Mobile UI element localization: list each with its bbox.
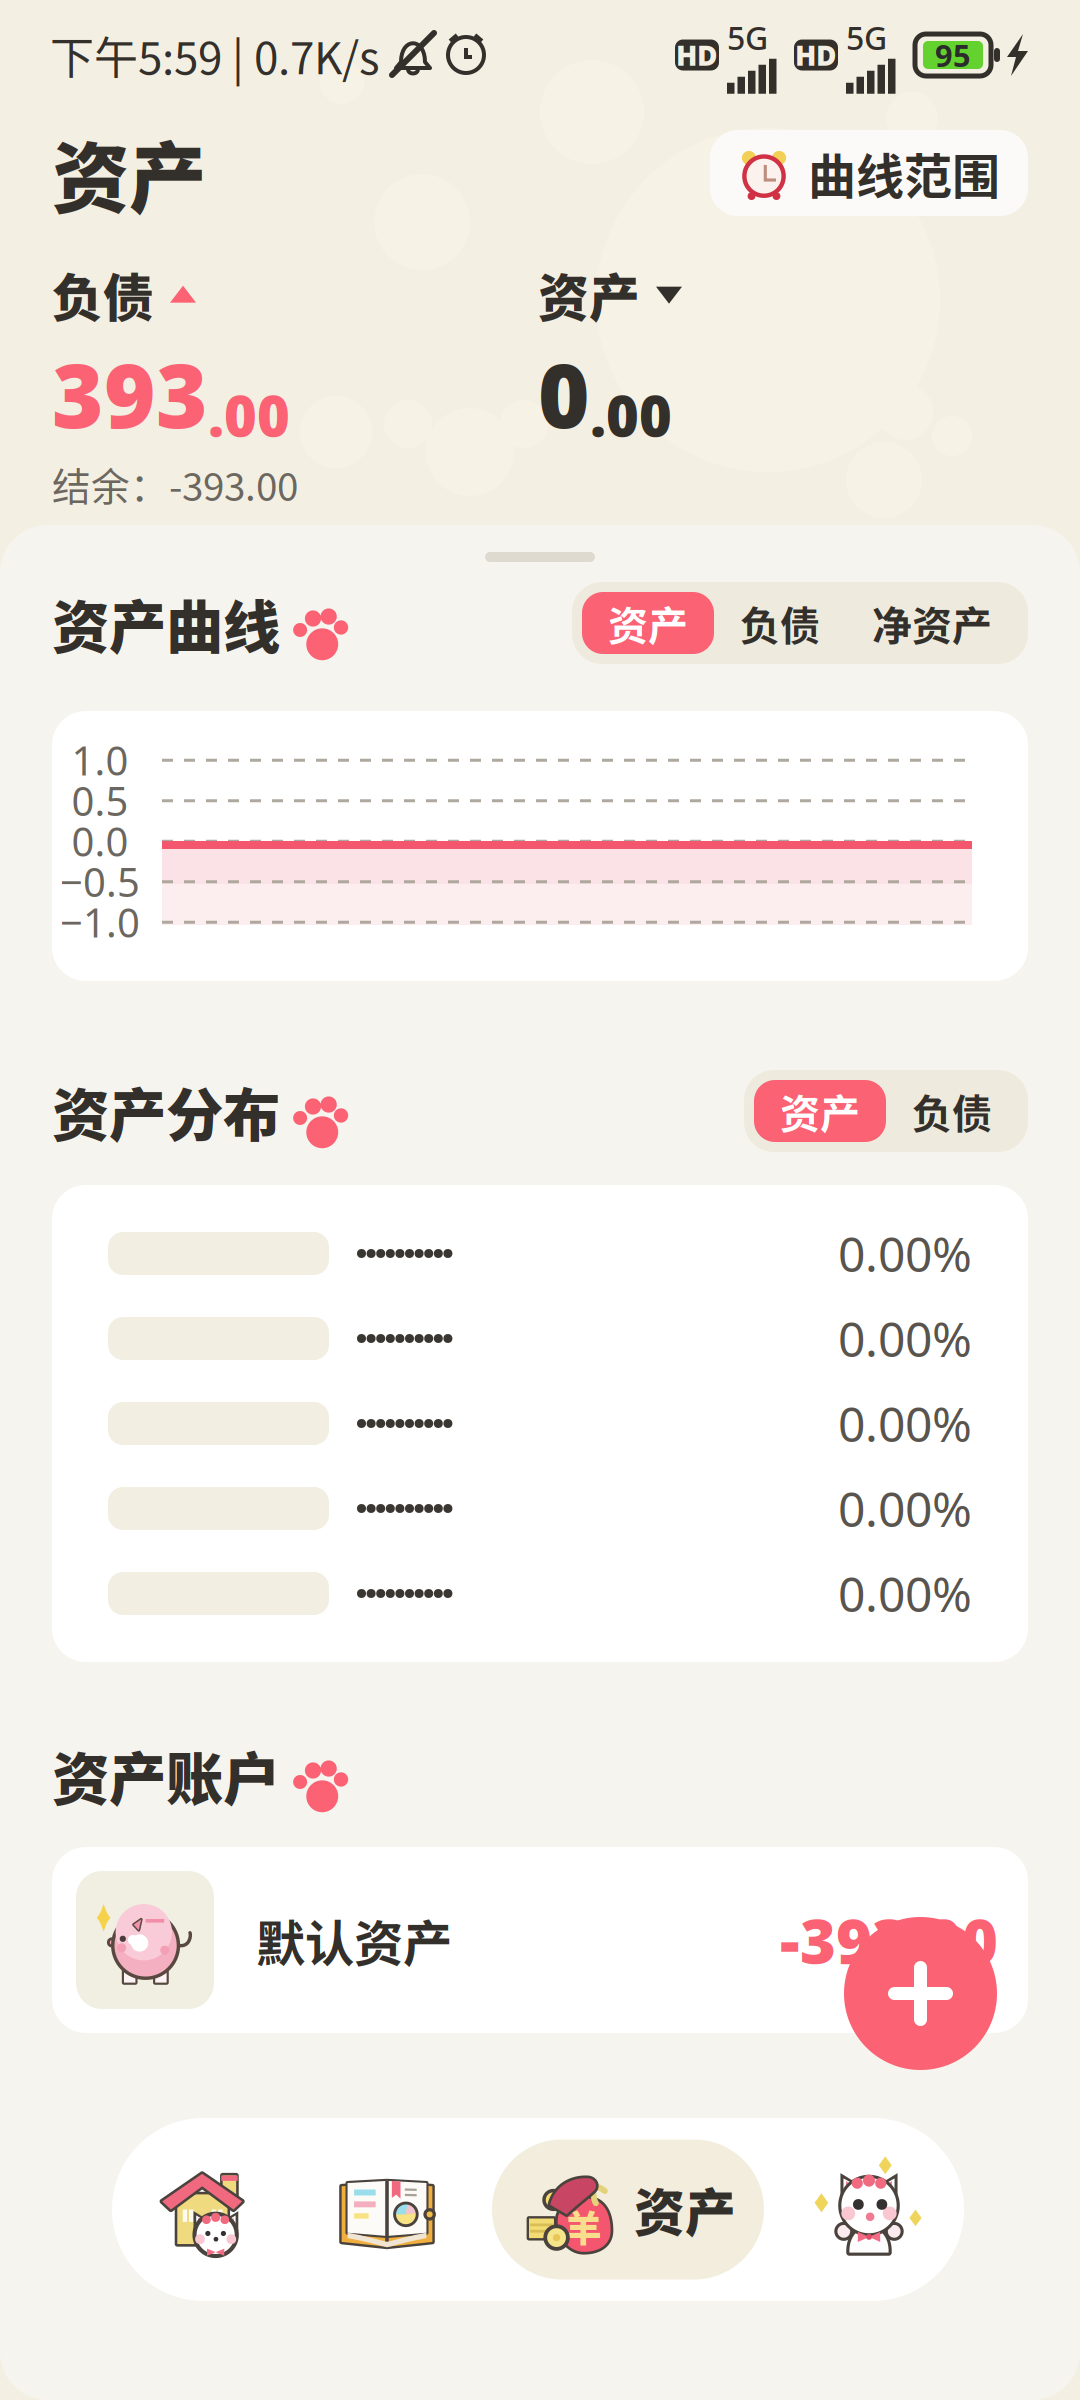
- button[interactable]: 资产: [754, 1080, 886, 1142]
- staticText: −0.5: [60, 855, 140, 908]
- button[interactable]: 首页: [132, 2134, 282, 2284]
- staticText: 资产: [608, 594, 688, 652]
- staticText: 资产: [634, 2173, 736, 2246]
- staticText: 0: [538, 335, 590, 452]
- staticText: 1.0: [71, 733, 128, 786]
- staticText: 默认资产: [256, 1904, 452, 1976]
- staticText: 0.00%: [838, 1562, 972, 1625]
- staticText: 0.0: [71, 814, 128, 867]
- button[interactable]: 负债: [714, 592, 846, 654]
- staticText: 下午5:59 | 0.7K/s: [50, 23, 380, 87]
- button[interactable]: 净资产: [846, 592, 1018, 654]
- button[interactable]: 我的: [794, 2134, 944, 2284]
- staticText: 曲线范围: [808, 138, 1000, 208]
- staticText: .00: [208, 378, 290, 452]
- staticText: 资产: [538, 258, 640, 331]
- staticText: 5G: [727, 16, 768, 59]
- staticText: 资产曲线: [52, 581, 280, 664]
- button[interactable]: 负债: [886, 1080, 1018, 1142]
- staticText: 5G: [846, 16, 887, 59]
- staticText: 资产: [780, 1082, 860, 1140]
- button[interactable]: 账本: [312, 2134, 462, 2284]
- staticText: 羊: [565, 2199, 602, 2252]
- staticText: 0.00%: [838, 1392, 972, 1455]
- staticText: HD: [795, 36, 837, 74]
- staticText: .00: [590, 378, 672, 452]
- button[interactable]: 羊: [492, 2139, 764, 2279]
- staticText: 0.5: [71, 774, 128, 827]
- staticText: 393: [52, 335, 208, 452]
- button[interactable]: 默认资产: [52, 1847, 1028, 2033]
- staticText: 0.00%: [838, 1307, 972, 1370]
- staticText: HD: [676, 36, 718, 74]
- staticText: 结余：-393.00: [52, 456, 298, 512]
- button[interactable]: 新增账户: [844, 1917, 997, 2070]
- staticText: 0.00%: [838, 1477, 972, 1540]
- staticText: -393.00: [780, 1899, 998, 1981]
- staticText: −1.0: [60, 895, 140, 948]
- staticText: 资产: [52, 117, 206, 229]
- staticText: 净资产: [872, 594, 992, 652]
- staticText: 负债: [740, 594, 820, 652]
- staticText: 资产分布: [52, 1069, 280, 1152]
- staticText: 负债: [912, 1082, 992, 1140]
- button[interactable]: 曲线范围: [710, 130, 1028, 216]
- staticText: 0.00%: [838, 1222, 972, 1285]
- staticText: 负债: [52, 258, 154, 331]
- button[interactable]: 资产: [582, 592, 714, 654]
- staticText: 95: [935, 35, 971, 75]
- staticText: 资产账户: [52, 1733, 280, 1816]
